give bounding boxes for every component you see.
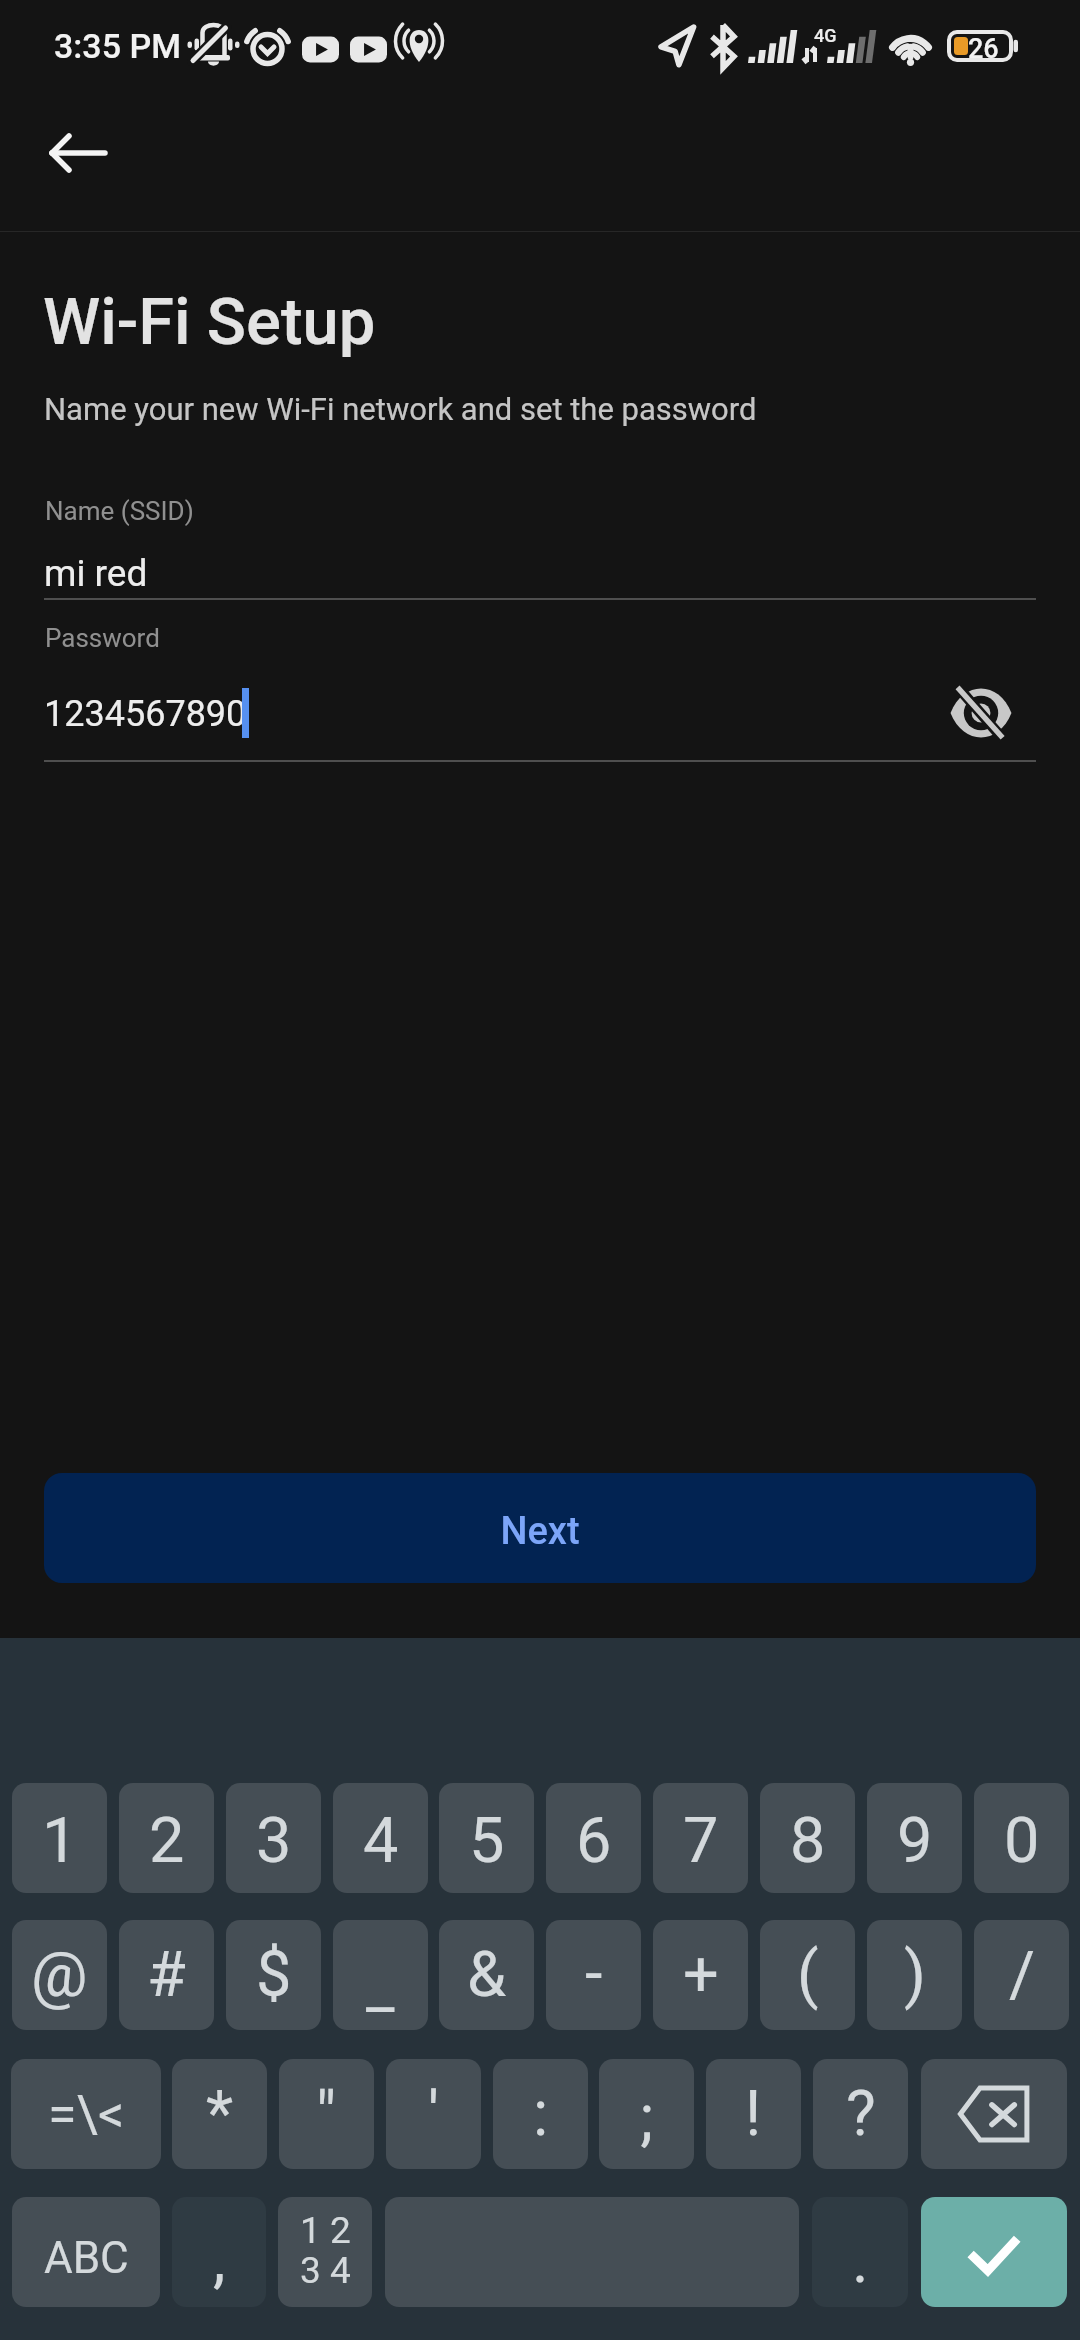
staticText: 1 [42, 1804, 78, 1878]
button[interactable]: Next [44, 1473, 1036, 1583]
staticText: Password [45, 623, 160, 653]
staticText: * [206, 2077, 234, 2151]
button[interactable]: _ [333, 1920, 428, 2030]
button[interactable]: 2 [119, 1783, 214, 1893]
staticText: ! [745, 2077, 762, 2151]
button[interactable]: Show password [936, 668, 1026, 758]
button[interactable]: " [279, 2059, 374, 2169]
staticText: & [467, 1938, 507, 2012]
staticText: : [533, 2077, 549, 2151]
button[interactable]: : [493, 2059, 588, 2169]
staticText: ) [904, 1938, 926, 2012]
button[interactable]: ! [706, 2059, 801, 2169]
staticText: _ [366, 1949, 395, 2023]
button[interactable]: ? [813, 2059, 908, 2169]
button[interactable]: / [974, 1920, 1069, 2030]
staticText: $ [256, 1938, 292, 2012]
button[interactable]: 1234567890 [0, 688, 1080, 740]
button[interactable]: 6 [546, 1783, 641, 1893]
staticText: 3 4 [300, 2249, 351, 2292]
button[interactable]: @ [12, 1920, 107, 2030]
button[interactable]: - [546, 1920, 641, 2030]
staticText: ' [428, 2078, 440, 2152]
button[interactable]: 9 [867, 1783, 962, 1893]
button[interactable]: * [172, 2059, 267, 2169]
button[interactable]: 4 [333, 1783, 428, 1893]
button[interactable]: Backspace [921, 2059, 1067, 2169]
staticText: " [316, 2078, 337, 2152]
staticText: Next [500, 1509, 580, 1554]
button[interactable]: Numbers [278, 2197, 372, 2307]
staticText: 8 [790, 1804, 826, 1878]
button[interactable]: 5 [439, 1783, 534, 1893]
button[interactable]: & [439, 1920, 534, 2030]
staticText: / [1009, 1938, 1035, 2012]
button[interactable]: + [653, 1920, 748, 2030]
staticText: Wi-Fi Setup [43, 284, 376, 360]
staticText: . [852, 2224, 869, 2298]
staticText: =\< [48, 2084, 125, 2145]
staticText: 7 [683, 1804, 719, 1878]
staticText: @ [31, 1938, 88, 2012]
button[interactable]: Back [14, 100, 122, 208]
button[interactable]: ' [386, 2059, 481, 2169]
button[interactable]: 3 [226, 1783, 321, 1893]
staticText: - [585, 1937, 603, 2011]
staticText: Name (SSID) [45, 496, 194, 526]
button[interactable]: ( [760, 1920, 855, 2030]
button[interactable]: ) [867, 1920, 962, 2030]
staticText: ? [846, 2077, 876, 2151]
button[interactable]: , [172, 2197, 266, 2307]
staticText: ; [640, 2081, 654, 2155]
button[interactable]: 7 [653, 1783, 748, 1893]
staticText: 4 [363, 1804, 399, 1878]
staticText: Name your new Wi-Fi network and set the … [44, 391, 757, 427]
button[interactable]: =\< [11, 2059, 161, 2169]
button[interactable]: ; [599, 2059, 694, 2169]
staticText: 6 [576, 1804, 612, 1878]
button[interactable]: 8 [760, 1783, 855, 1893]
staticText: 0 [1004, 1804, 1040, 1878]
button[interactable]: 0 [974, 1783, 1069, 1893]
button[interactable]: . [812, 2197, 908, 2307]
staticText: 9 [897, 1804, 933, 1878]
staticText: # [147, 1938, 186, 2012]
button[interactable]: # [119, 1920, 214, 2030]
staticText: , [213, 2223, 226, 2297]
staticText: ( [797, 1938, 819, 2012]
staticText: 2 [149, 1804, 185, 1878]
staticText: + [683, 1938, 719, 2012]
staticText: 1234567890 [44, 693, 247, 735]
staticText: 26 [968, 33, 999, 65]
staticText: 4G [814, 25, 837, 46]
staticText: mi red [44, 552, 148, 595]
staticText: 5 [469, 1804, 505, 1878]
button[interactable]: Enter [921, 2197, 1067, 2307]
button[interactable]: $ [226, 1920, 321, 2030]
button[interactable]: mi red [0, 548, 1080, 598]
staticText: 1 2 [300, 2209, 351, 2252]
staticText: ABC [44, 2232, 129, 2284]
button[interactable]: 1 [12, 1783, 107, 1893]
staticText: 3 [256, 1804, 292, 1878]
button[interactable]: ABC [12, 2197, 160, 2307]
staticText: 3:35 PM [54, 26, 181, 66]
